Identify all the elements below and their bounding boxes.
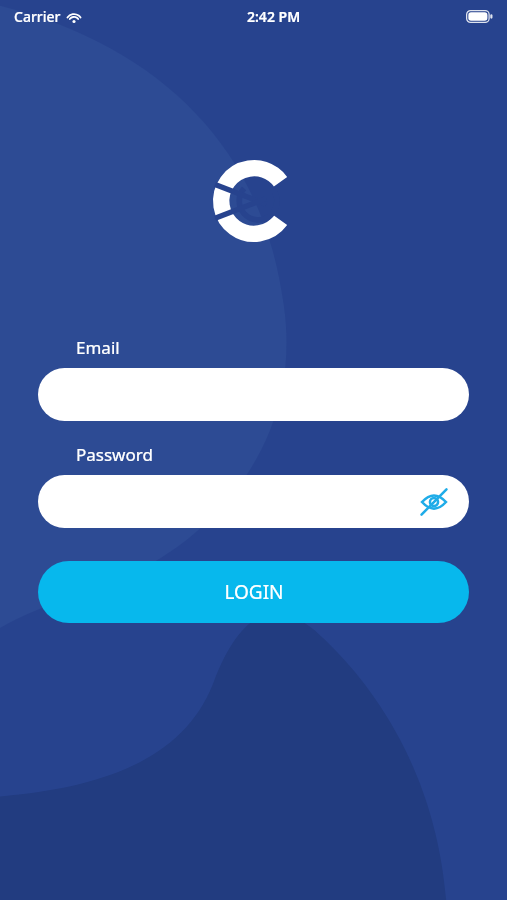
button[interactable]: Show password (38, 475, 469, 528)
staticText: Email (76, 336, 120, 359)
button[interactable]: LOGIN (38, 561, 469, 623)
staticText: 2:42 PM (247, 7, 301, 26)
button[interactable] (38, 368, 469, 421)
button[interactable]: Show password (417, 485, 451, 519)
staticText: Password (76, 443, 153, 466)
staticText: Carrier (14, 7, 61, 26)
staticText: LOGIN (224, 579, 284, 605)
